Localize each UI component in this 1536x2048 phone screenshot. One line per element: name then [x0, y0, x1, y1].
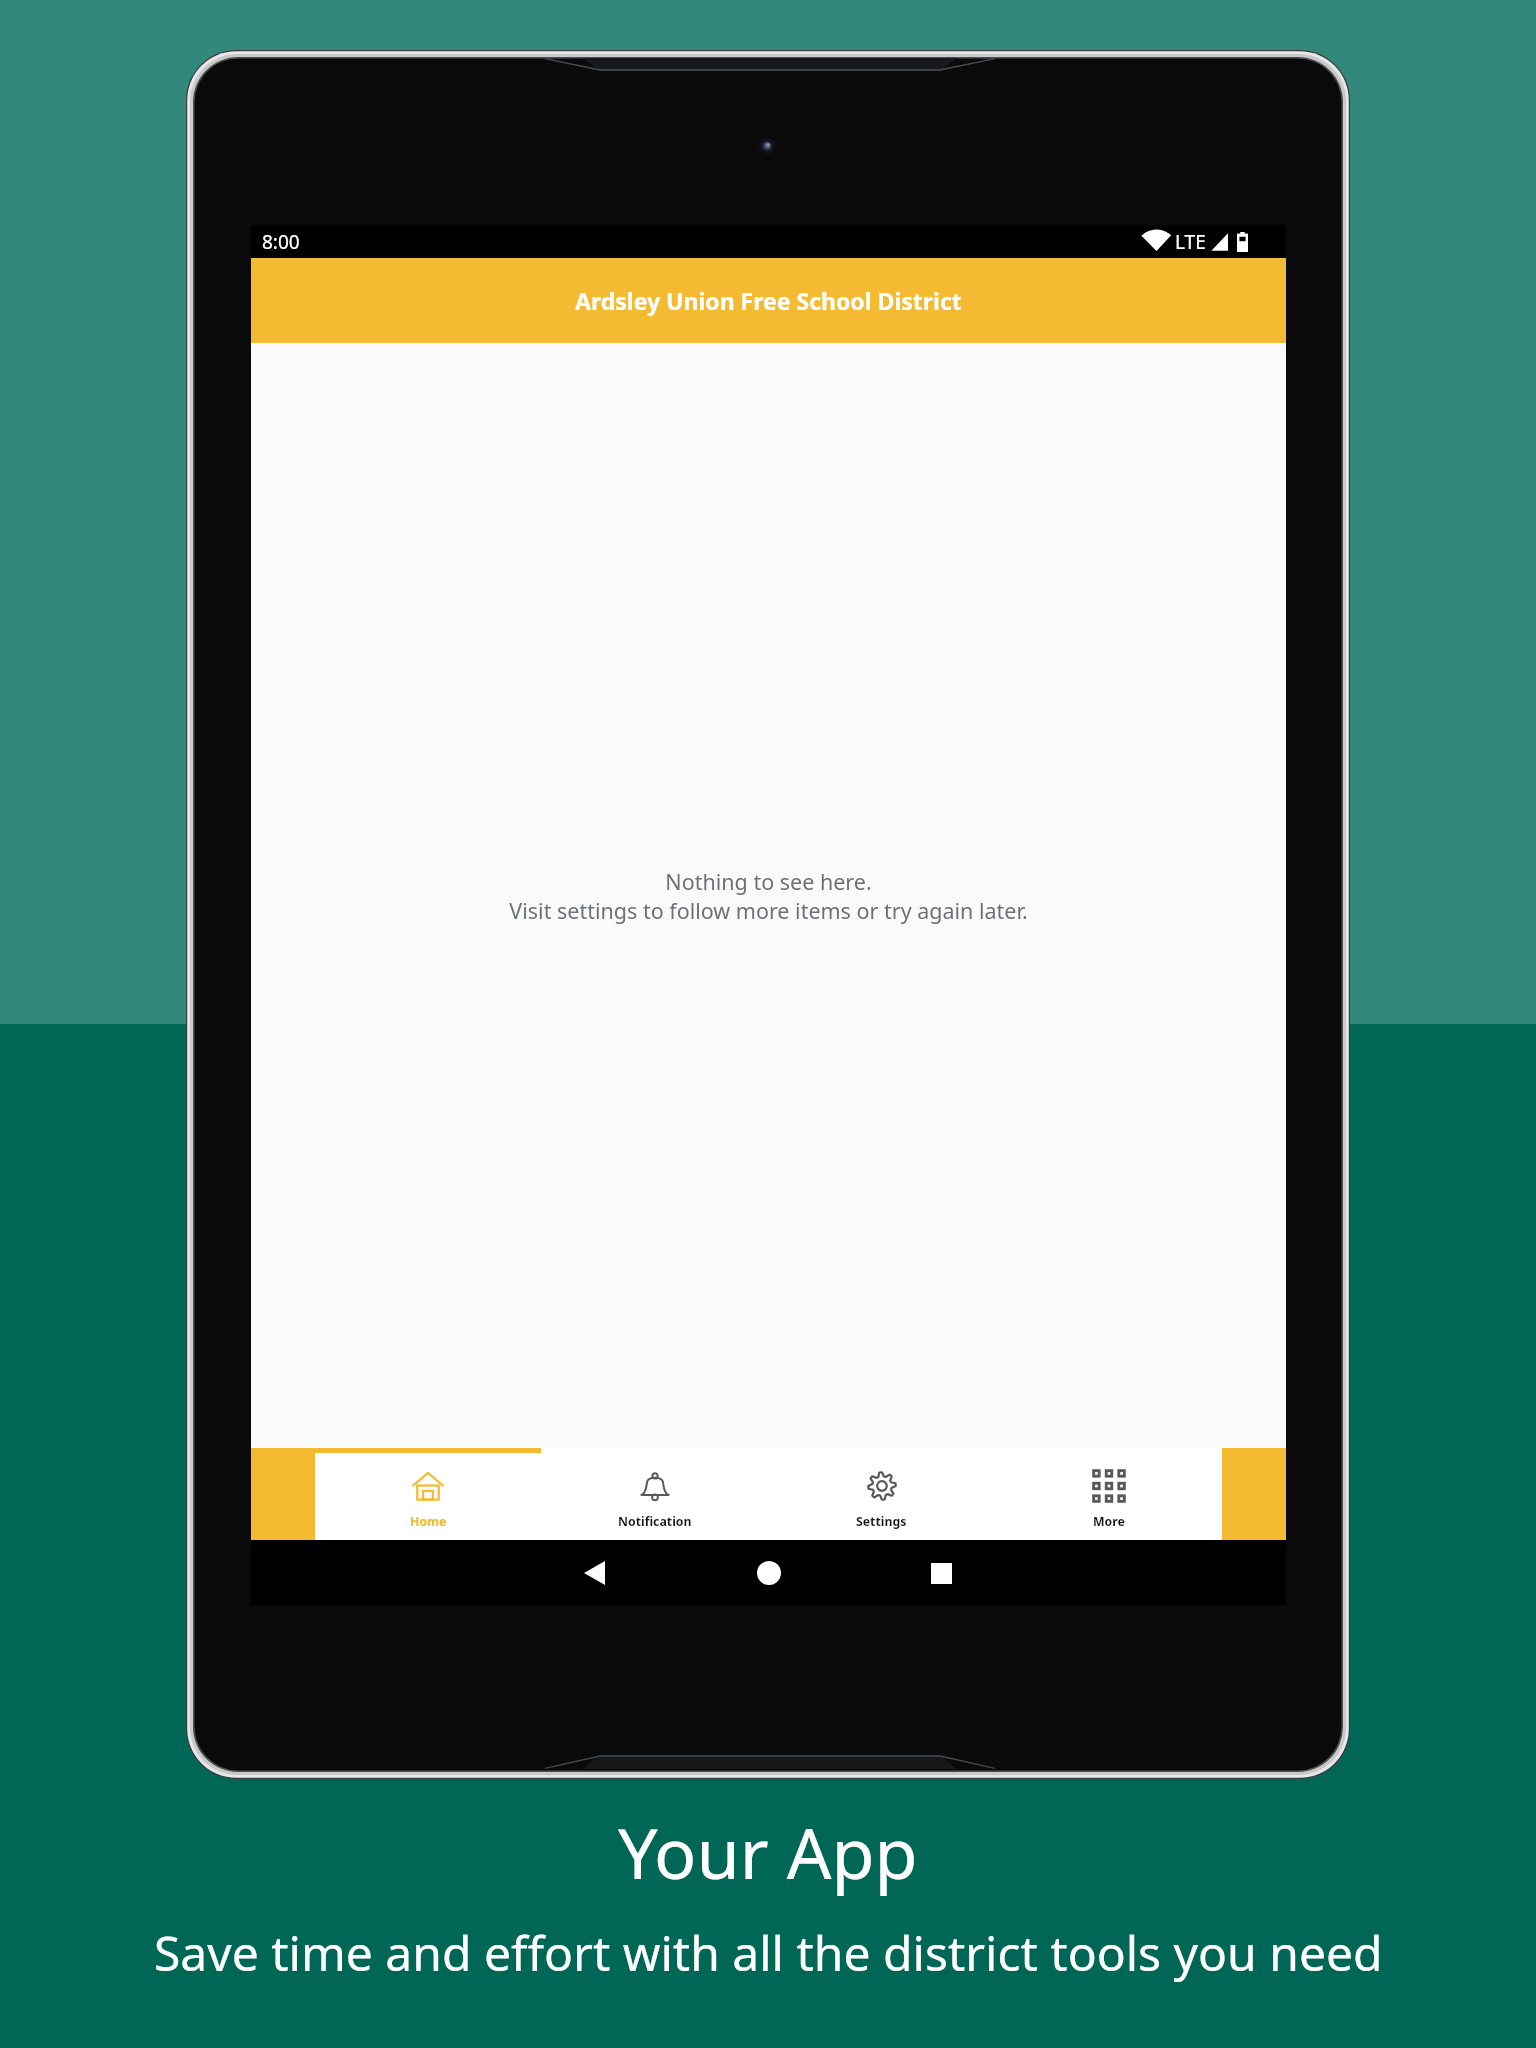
staticText: Settings: [856, 1513, 907, 1530]
button[interactable]: Home: [315, 1448, 541, 1540]
staticText: Your App: [618, 1804, 918, 1899]
button[interactable]: Notification: [541, 1448, 768, 1540]
button[interactable]: Back: [549, 1545, 639, 1601]
button[interactable]: Ardsley Union Free School District: [251, 258, 1286, 343]
button[interactable]: Home: [724, 1545, 814, 1601]
staticText: More: [1093, 1513, 1125, 1530]
staticText: Save time and effort with all the distri…: [154, 1920, 1383, 1985]
staticText: Ardsley Union Free School District: [575, 285, 962, 316]
button[interactable]: More: [995, 1448, 1222, 1540]
staticText: Notification: [618, 1513, 692, 1530]
button[interactable]: Settings: [768, 1448, 995, 1540]
staticText: LTE: [1175, 229, 1206, 255]
button[interactable]: Recent apps: [896, 1545, 986, 1601]
staticText: Nothing to see here. Visit settings to f…: [509, 867, 1028, 925]
staticText: 8:00: [262, 229, 300, 255]
staticText: Home: [410, 1513, 447, 1530]
